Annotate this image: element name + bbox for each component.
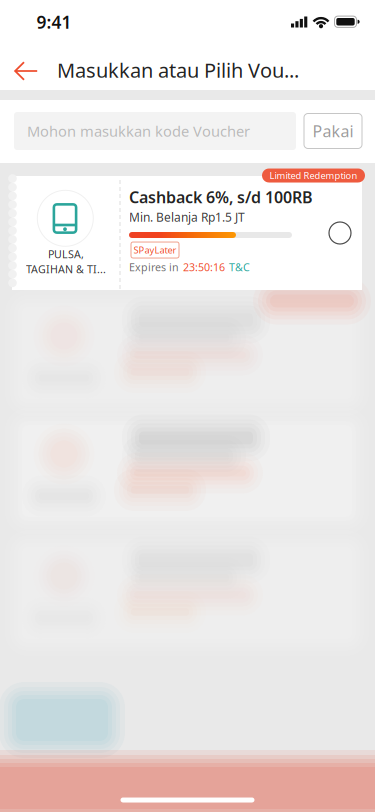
button[interactable]: Back (3, 48, 49, 94)
staticText: Cashback 6%, s/d 100RB (129, 186, 313, 208)
staticText: PULSA, (48, 247, 84, 261)
staticText: Limited Redemption (269, 169, 357, 182)
staticText: TAGIHAN & TI... (26, 262, 106, 276)
staticText: Pakai (312, 120, 353, 142)
button[interactable]: Limited Redemption (262, 168, 365, 182)
button[interactable]: PULSA, (12, 176, 362, 290)
staticText: Masukkan atau Pilih Vou... (57, 57, 299, 83)
button[interactable]: Pakai (304, 113, 362, 148)
staticText: Mohon masukkan kode Voucher (27, 121, 250, 141)
staticText: SPayLater (133, 244, 176, 256)
staticText: 9:41 (36, 10, 71, 33)
staticText: 23:50:16 (183, 260, 225, 274)
staticText: Expires in (129, 260, 179, 274)
staticText: Min. Belanja Rp1.5 JT (129, 209, 245, 225)
staticText: T&C (229, 260, 250, 274)
